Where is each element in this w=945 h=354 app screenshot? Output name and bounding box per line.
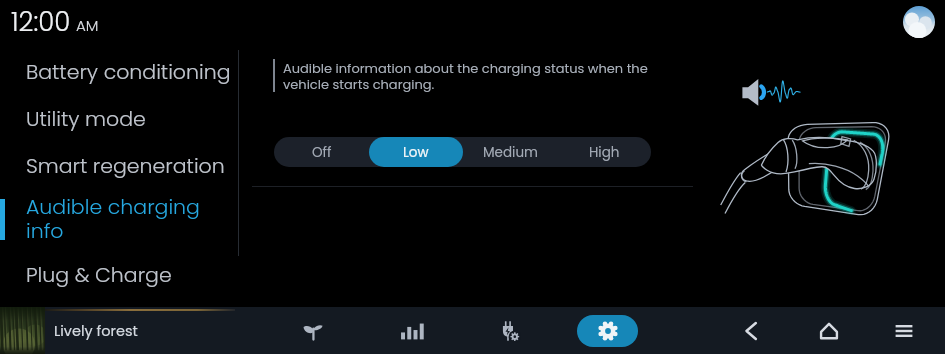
button[interactable]: Back [732,311,772,351]
staticText: AM [76,15,99,36]
button[interactable]: Medium [463,137,557,167]
button[interactable]: Menu [884,311,924,351]
staticText: Low [403,143,429,162]
staticText: Medium [483,143,538,162]
staticText: Utility mode [26,104,146,133]
button[interactable]: Profile [903,6,935,38]
button[interactable]: Low [369,137,463,167]
staticText: Smart regeneration [26,151,225,180]
button[interactable]: Eco driving [293,311,333,351]
staticText: Off [312,143,332,162]
button[interactable]: High [557,137,651,167]
staticText: Lively forest [54,321,138,341]
staticText: Battery conditioning [26,57,231,86]
staticText: Audible information about the charging s… [283,59,648,94]
button[interactable]: Energy statistics [391,311,431,351]
button[interactable]: Utility mode [0,95,238,142]
button[interactable]: Now playing artwork [0,307,45,354]
button[interactable]: Battery conditioning [0,48,238,95]
button[interactable]: Smart regeneration [0,142,238,189]
staticText: 12:00 [11,4,71,40]
button[interactable]: Plug & Charge [0,251,238,298]
button[interactable]: Charging settings [490,311,530,351]
button[interactable]: Audible charging info [0,189,238,249]
staticText: High [589,143,620,162]
button[interactable]: Home [809,311,849,351]
button[interactable]: Off [274,137,369,167]
staticText: Plug & Charge [26,260,172,289]
button[interactable]: Settings [577,315,638,347]
staticText: Audible charging info [26,192,200,246]
